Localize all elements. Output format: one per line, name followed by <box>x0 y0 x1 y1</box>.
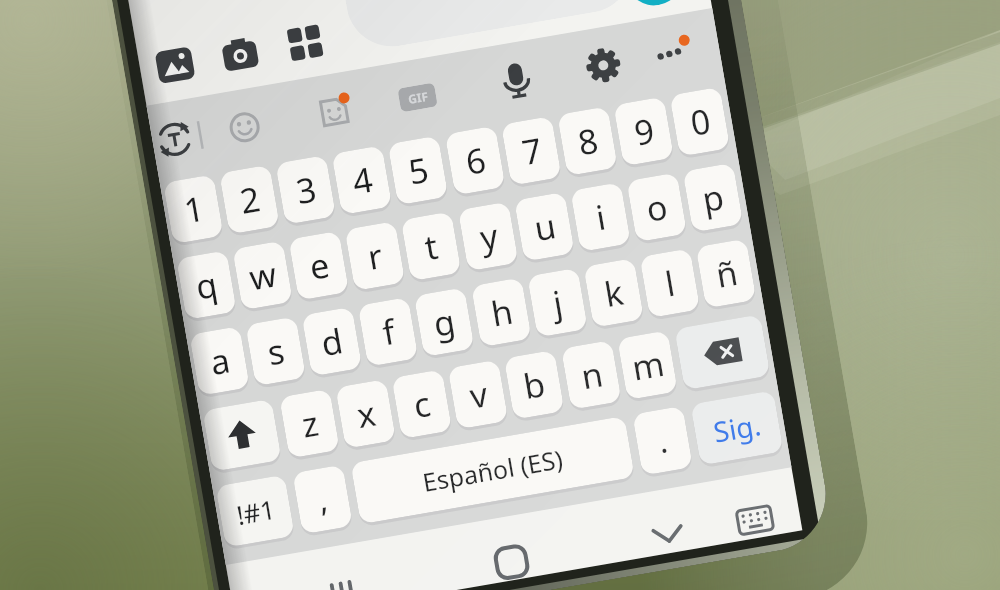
button[interactable]: 4 <box>331 145 392 215</box>
staticText: 9 <box>630 107 658 156</box>
button[interactable] <box>219 33 261 75</box>
staticText: 4 <box>349 156 376 204</box>
staticText: Sig. <box>710 405 764 451</box>
button[interactable] <box>284 22 326 64</box>
button[interactable] <box>496 59 537 101</box>
button[interactable]: m <box>617 330 678 400</box>
button[interactable]: n <box>561 340 622 410</box>
button[interactable]: e <box>288 231 349 301</box>
button[interactable]: b <box>504 350 565 420</box>
button[interactable]: GIF <box>397 82 438 112</box>
button[interactable] <box>674 314 771 390</box>
button[interactable]: 5 <box>388 135 448 205</box>
staticText: 7 <box>518 126 545 175</box>
staticText: 2 <box>236 175 264 224</box>
button[interactable]: v <box>448 360 508 429</box>
staticText: h <box>487 288 517 337</box>
staticText: Español (ES) <box>420 441 565 499</box>
staticText: l <box>661 260 678 307</box>
staticText: GIF <box>407 88 429 107</box>
button[interactable]: l <box>639 248 700 318</box>
button[interactable]: Español (ES) <box>350 416 635 524</box>
button[interactable]: , <box>292 465 353 534</box>
button[interactable]: d <box>301 307 362 376</box>
staticText: e <box>305 241 333 290</box>
button[interactable] <box>154 44 196 86</box>
button[interactable]: s <box>245 316 306 386</box>
staticText: o <box>642 183 671 232</box>
button[interactable]: x <box>335 379 396 449</box>
staticText: z <box>298 399 322 448</box>
staticText: ñ <box>712 249 741 298</box>
button[interactable] <box>582 44 624 86</box>
staticText: 0 <box>687 97 714 146</box>
button[interactable]: Sig. <box>690 390 784 466</box>
staticText: d <box>318 317 346 366</box>
button[interactable]: k <box>583 258 644 328</box>
staticText: f <box>379 308 398 355</box>
staticText: 1 <box>180 185 208 233</box>
button[interactable] <box>313 91 355 133</box>
button[interactable] <box>622 0 686 10</box>
button[interactable] <box>335 0 639 53</box>
staticText: n <box>577 350 607 399</box>
staticText: m <box>628 340 668 390</box>
button[interactable] <box>202 399 282 472</box>
button[interactable]: z <box>279 389 340 458</box>
button[interactable]: f <box>358 297 418 367</box>
button[interactable]: !#1 <box>215 475 295 548</box>
staticText: g <box>430 298 458 347</box>
button[interactable]: i <box>570 182 631 252</box>
staticText: 6 <box>462 136 489 185</box>
staticText: w <box>245 250 280 300</box>
staticText: p <box>699 173 727 222</box>
button[interactable]: . <box>632 406 693 476</box>
staticText: s <box>263 327 288 375</box>
staticText: 5 <box>405 146 432 195</box>
button[interactable]: t <box>401 211 461 281</box>
button[interactable]: q <box>176 250 237 320</box>
button[interactable] <box>154 119 195 160</box>
staticText: c <box>410 380 434 428</box>
button[interactable]: 1 <box>163 174 224 244</box>
button[interactable]: c <box>391 369 452 439</box>
staticText: b <box>520 360 548 409</box>
button[interactable]: 7 <box>501 116 562 186</box>
button[interactable]: ñ <box>696 239 756 308</box>
staticText: r <box>364 232 386 280</box>
button[interactable]: y <box>458 201 519 271</box>
button[interactable]: r <box>344 221 405 291</box>
button[interactable] <box>224 106 265 148</box>
button[interactable]: p <box>682 163 743 232</box>
staticText: , <box>314 477 331 522</box>
button[interactable] <box>645 512 691 558</box>
staticText: . <box>654 418 671 463</box>
button[interactable]: h <box>471 277 532 347</box>
staticText: j <box>549 279 566 326</box>
staticText: 3 <box>292 165 320 214</box>
button[interactable] <box>731 493 777 539</box>
staticText: y <box>476 212 502 260</box>
staticText: a <box>206 336 234 385</box>
button[interactable]: 6 <box>445 126 506 195</box>
button[interactable]: 0 <box>669 87 730 157</box>
staticText: u <box>530 202 560 251</box>
button[interactable]: 3 <box>275 155 336 225</box>
button[interactable] <box>488 539 535 585</box>
button[interactable]: 8 <box>557 106 618 176</box>
button[interactable]: j <box>527 268 588 337</box>
button[interactable]: u <box>514 192 575 262</box>
button[interactable]: 9 <box>613 97 674 166</box>
button[interactable]: 2 <box>219 165 280 234</box>
staticText: 8 <box>574 117 602 165</box>
button[interactable]: a <box>189 326 250 396</box>
button[interactable] <box>648 33 690 75</box>
staticText: k <box>600 269 627 317</box>
button[interactable]: o <box>626 172 687 242</box>
button[interactable]: w <box>232 240 293 310</box>
button[interactable]: g <box>414 287 475 357</box>
staticText: i <box>592 194 609 240</box>
button[interactable] <box>317 569 363 590</box>
staticText: q <box>192 261 221 310</box>
staticText: t <box>421 222 441 270</box>
